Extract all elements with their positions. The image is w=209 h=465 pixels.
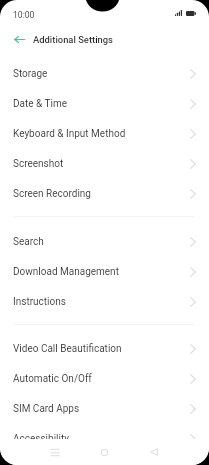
staticText: Accessibility bbox=[13, 433, 69, 445]
staticText: Storage bbox=[13, 68, 48, 80]
staticText: 10:00 bbox=[13, 10, 35, 20]
button[interactable]: Back bbox=[140, 439, 167, 465]
button[interactable]: Date & Time bbox=[0, 89, 209, 119]
button[interactable]: Screen Recording bbox=[0, 179, 209, 209]
staticText: Instructions bbox=[13, 296, 66, 308]
button[interactable]: Screenshot bbox=[0, 149, 209, 179]
button[interactable]: Home bbox=[91, 439, 118, 465]
button[interactable]: Search bbox=[0, 227, 209, 257]
button[interactable]: Instructions bbox=[0, 287, 209, 317]
staticText: Keyboard & Input Method bbox=[13, 128, 126, 140]
button[interactable]: Automatic On/Off bbox=[0, 364, 209, 394]
button[interactable]: Keyboard & Input Method bbox=[0, 119, 209, 149]
button[interactable]: SIM Card Apps bbox=[0, 394, 209, 424]
staticText: Video Call Beautification bbox=[13, 343, 122, 355]
staticText: Download Management bbox=[13, 266, 119, 278]
staticText: Screen Recording bbox=[13, 188, 91, 200]
staticText: Date & Time bbox=[13, 98, 68, 110]
button[interactable]: Recent apps bbox=[41, 439, 68, 465]
staticText: Additional Settings bbox=[33, 34, 113, 45]
button[interactable]: Accessibility bbox=[0, 424, 209, 454]
button[interactable]: Download Management bbox=[0, 257, 209, 287]
button[interactable]: Back bbox=[8, 28, 30, 50]
button[interactable]: Video Call Beautification bbox=[0, 334, 209, 364]
button[interactable]: Storage bbox=[0, 59, 209, 89]
staticText: SIM Card Apps bbox=[13, 403, 80, 415]
staticText: Automatic On/Off bbox=[13, 373, 92, 385]
staticText: Search bbox=[13, 236, 44, 248]
staticText: Screenshot bbox=[13, 158, 64, 170]
